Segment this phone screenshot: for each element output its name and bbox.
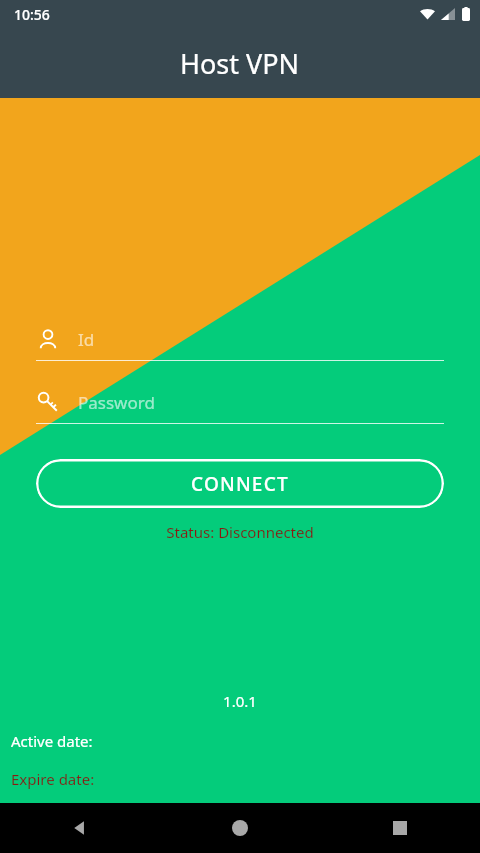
staticText: CONNECT (191, 471, 289, 497)
staticText: Password (78, 391, 155, 414)
button[interactable]: Home (160, 803, 320, 853)
button[interactable]: CONNECT (36, 459, 444, 508)
button[interactable]: Password (36, 388, 444, 424)
staticText: Expire date: (11, 769, 95, 789)
staticText: 1.0.1 (0, 691, 480, 711)
staticText: Id (78, 328, 95, 351)
staticText: Active date: (11, 731, 93, 751)
button[interactable]: Recent apps (320, 803, 480, 853)
staticText: 10:56 (14, 5, 50, 24)
staticText: Status: Disconnected (0, 522, 480, 542)
button[interactable]: Back (0, 803, 160, 853)
staticText: Host VPN (180, 45, 300, 82)
button[interactable]: Id (36, 325, 444, 361)
